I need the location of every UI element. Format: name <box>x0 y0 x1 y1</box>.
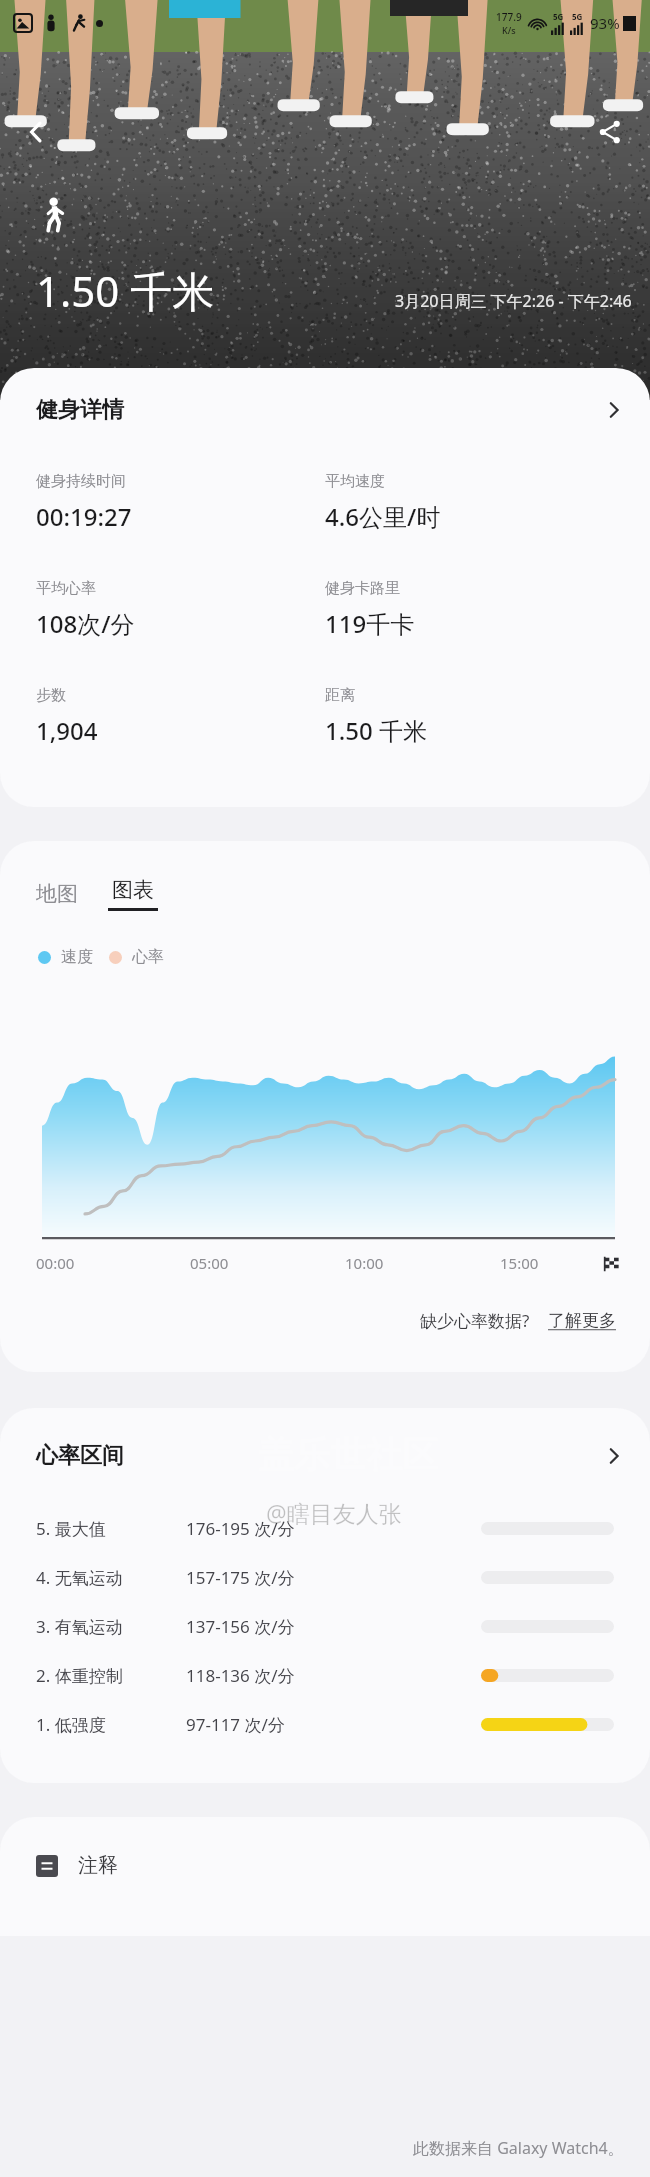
staticText: 118-136 次/分 <box>186 1664 295 1687</box>
staticText: 00:00 <box>36 1253 75 1273</box>
staticText: 步数 <box>36 686 66 705</box>
staticText: 4.6公里/时 <box>325 500 441 533</box>
staticText: 157-175 次/分 <box>186 1566 295 1589</box>
staticText: 缺少心率数据? <box>420 1309 530 1332</box>
staticText: K/s <box>502 24 516 36</box>
staticText: @瞎目友人张 <box>266 1497 402 1528</box>
staticText: 1.50 千米 <box>36 262 215 319</box>
staticText: 1. 低强度 <box>36 1713 106 1736</box>
staticText: 05:00 <box>190 1253 229 1273</box>
staticText: 了解更多 <box>548 1310 616 1331</box>
staticText: 健身卡路里 <box>325 579 400 598</box>
staticText: 健身详情 <box>36 396 124 424</box>
staticText: 心率 <box>132 947 164 967</box>
staticText: 5. 最大值 <box>36 1517 106 1540</box>
staticText: 176-195 次/分 <box>186 1517 295 1540</box>
staticText: 119千卡 <box>325 607 415 640</box>
staticText: 此数据来自 Galaxy Watch4。 <box>413 2137 624 2159</box>
staticText: 距离 <box>325 686 355 705</box>
staticText: 1.50 千米 <box>325 714 427 747</box>
staticText: 5G <box>572 11 583 22</box>
staticText: 4. 无氧运动 <box>36 1566 123 1589</box>
staticText: 注释 <box>78 1853 118 1878</box>
button[interactable]: 了解更多 <box>548 1310 616 1331</box>
button[interactable]: Share <box>586 108 634 156</box>
staticText: 地图 <box>36 881 78 907</box>
staticText: 图表 <box>112 877 154 903</box>
button[interactable]: 地图 <box>36 877 78 911</box>
button[interactable]: Back <box>12 108 60 156</box>
staticText: 177.9 <box>496 10 522 24</box>
staticText: 速度 <box>61 947 93 967</box>
staticText: 15:00 <box>500 1253 539 1273</box>
staticText: 10:00 <box>345 1253 384 1273</box>
staticText: 5G <box>553 11 564 22</box>
button[interactable]: 注释 <box>0 1817 650 1906</box>
staticText: 健身持续时间 <box>36 472 126 491</box>
button[interactable]: 健身详情 <box>0 368 650 442</box>
staticText: 平均心率 <box>36 579 96 598</box>
staticText: 1,904 <box>36 714 98 747</box>
staticText: 00:19:27 <box>36 500 132 533</box>
staticText: 平均速度 <box>325 472 385 491</box>
staticText: 108次/分 <box>36 607 135 640</box>
staticText: 93% <box>590 13 620 33</box>
button[interactable]: 心率区间 <box>0 1408 650 1486</box>
staticText: 97-117 次/分 <box>186 1713 285 1736</box>
staticText: 心率区间 <box>36 1442 124 1470</box>
staticText: 2. 体重控制 <box>36 1664 123 1687</box>
staticText: 137-156 次/分 <box>186 1615 295 1638</box>
staticText: 3. 有氧运动 <box>36 1615 123 1638</box>
button[interactable]: 图表 <box>108 873 158 915</box>
staticText: 3月20日周三 下午2:26 - 下午2:46 <box>395 290 632 312</box>
